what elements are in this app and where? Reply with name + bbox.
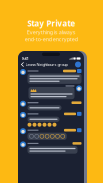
staticText: Leona Neighbours group bbox=[25, 62, 67, 67]
staticText: Stay Private bbox=[27, 18, 75, 29]
staticText: 9:41 bbox=[21, 56, 28, 61]
button[interactable]: Back bbox=[21, 62, 24, 67]
staticText: end-to-end encrypted bbox=[25, 36, 78, 43]
staticText: Everything is always bbox=[27, 29, 76, 36]
button[interactable]: Group details bbox=[75, 61, 81, 67]
